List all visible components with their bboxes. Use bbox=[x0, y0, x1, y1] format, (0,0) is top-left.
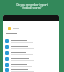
button[interactable] bbox=[3, 68, 59, 72]
button[interactable] bbox=[3, 27, 59, 30]
button[interactable] bbox=[3, 62, 59, 68]
button[interactable] bbox=[3, 44, 59, 50]
button[interactable] bbox=[3, 50, 59, 56]
button[interactable] bbox=[3, 56, 59, 62]
staticText: Do you remember import football scores? bbox=[16, 3, 48, 9]
button[interactable] bbox=[3, 38, 59, 44]
